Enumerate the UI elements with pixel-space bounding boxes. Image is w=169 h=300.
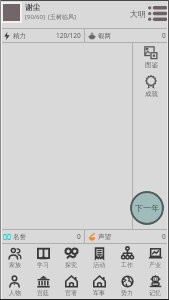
button[interactable]: 探究: [57, 244, 85, 272]
staticText: 探究: [65, 261, 77, 269]
button[interactable]: 银两: [85, 29, 169, 42]
button[interactable]: 精力: [0, 29, 84, 42]
staticText: 宫廷: [37, 289, 49, 297]
staticText: 人物: [9, 289, 21, 297]
staticText: 官署: [65, 289, 77, 297]
button[interactable]: 势力: [113, 272, 141, 300]
staticText: 名誉: [13, 233, 26, 241]
staticText: 工作: [121, 261, 133, 269]
staticText: 0: [162, 232, 166, 241]
staticText: 银两: [98, 32, 111, 40]
button[interactable]: 宫廷: [29, 272, 57, 300]
staticText: 0: [77, 232, 81, 241]
button[interactable]: 官署: [57, 272, 85, 300]
staticText: 声望: [98, 233, 111, 241]
button[interactable]: 学习: [29, 244, 57, 272]
button[interactable]: 活动: [85, 244, 113, 272]
staticText: 大明: [130, 9, 146, 19]
button[interactable]: 图鉴: [136, 45, 166, 70]
button[interactable]: 成就: [136, 74, 166, 99]
button[interactable]: 声望: [85, 230, 169, 243]
button[interactable]: 人物: [0, 272, 29, 300]
staticText: [90/60] [玉树临风]: [25, 13, 76, 21]
button[interactable]: 下一年: [130, 191, 164, 225]
staticText: 军事: [93, 289, 105, 297]
staticText: 学习: [37, 261, 49, 269]
staticText: 成就: [145, 90, 158, 98]
staticText: 下一年: [135, 203, 159, 213]
button[interactable]: 家族: [0, 244, 29, 272]
staticText: 活动: [93, 261, 105, 269]
staticText: 120/120: [56, 31, 81, 40]
button[interactable]: 军事: [85, 272, 113, 300]
button[interactable]: 工作: [113, 244, 141, 272]
staticText: 家族: [9, 261, 21, 269]
staticText: 产业: [149, 261, 161, 269]
staticText: 精力: [13, 32, 26, 40]
staticText: 图鉴: [145, 61, 158, 69]
staticText: 记忆: [149, 289, 161, 297]
staticText: 谢尘: [25, 3, 40, 12]
staticText: 势力: [121, 289, 133, 297]
staticText: 0: [162, 31, 166, 40]
button[interactable]: 记忆: [141, 272, 169, 300]
button[interactable]: 名誉: [0, 230, 84, 243]
button[interactable]: 产业: [141, 244, 169, 272]
button[interactable]: Menu: [148, 5, 167, 22]
